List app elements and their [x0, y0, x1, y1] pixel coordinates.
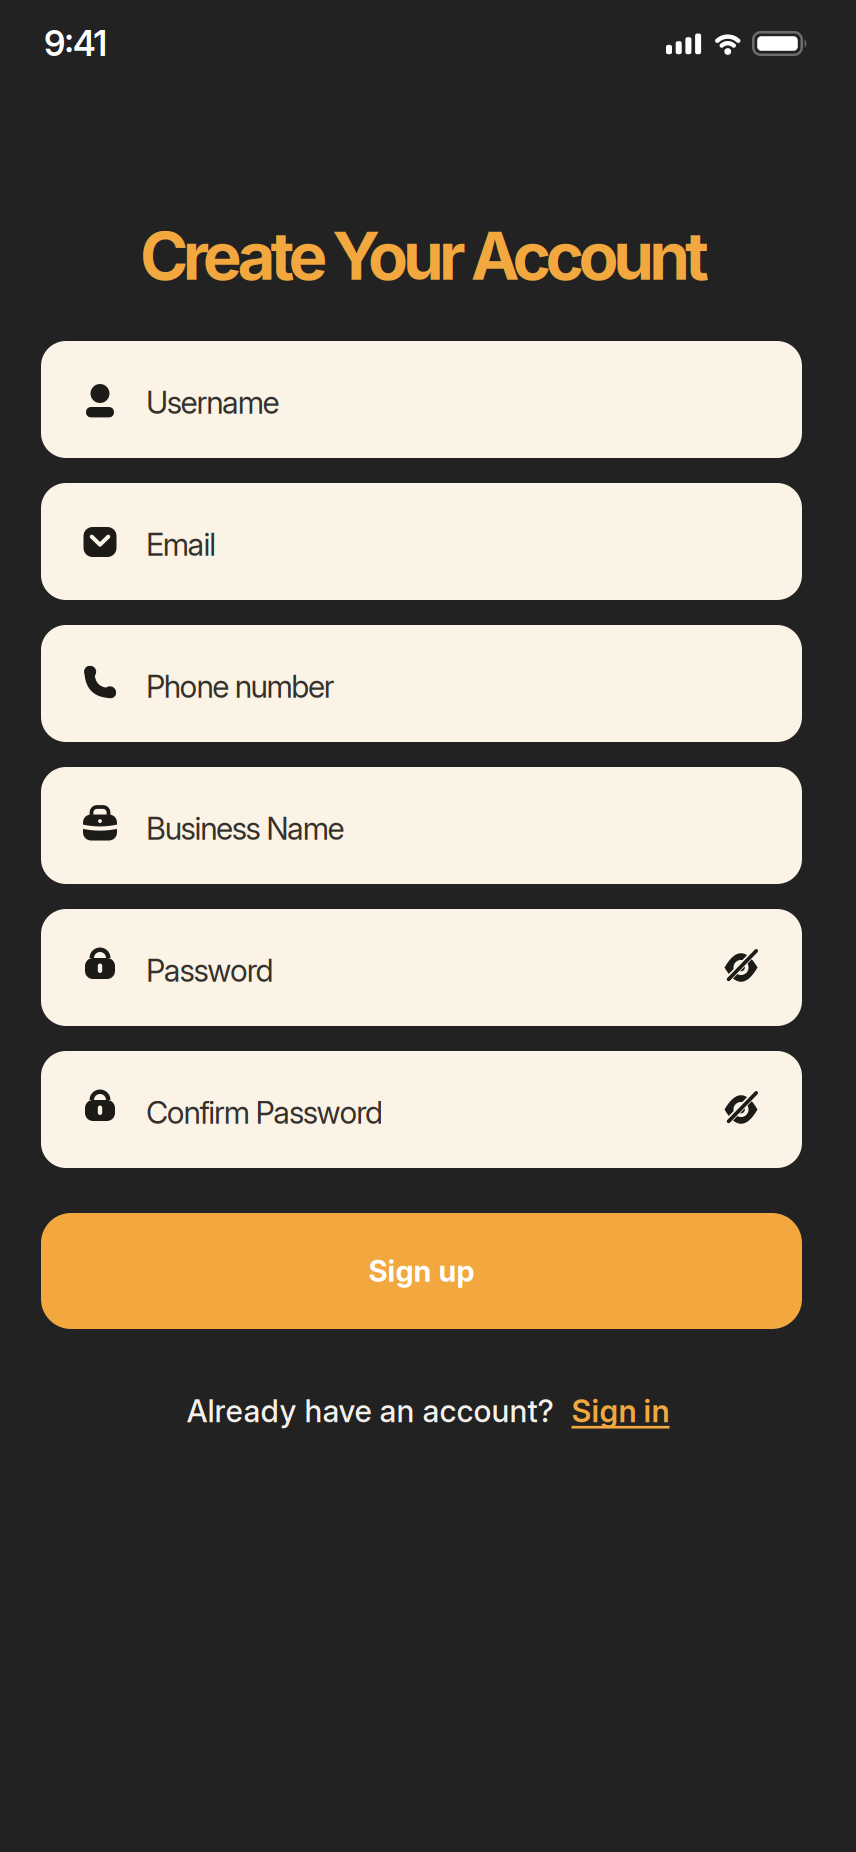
staticText: 9:41 — [44, 23, 107, 64]
button[interactable]: Phone number — [0, 625, 856, 742]
button[interactable]: Sign up — [0, 1213, 856, 1329]
button[interactable]: Show password — [721, 947, 802, 987]
staticText: Password — [146, 952, 274, 989]
button[interactable]: Email — [0, 483, 856, 600]
button[interactable]: Business Name — [0, 767, 856, 884]
button[interactable]: Password — [0, 909, 856, 1026]
button[interactable]: Username — [0, 341, 856, 458]
staticText: Phone number — [146, 668, 335, 705]
staticText: Email — [146, 526, 216, 563]
button[interactable]: Show password — [721, 1089, 802, 1129]
button[interactable]: Sign in — [571, 1393, 669, 1429]
staticText: Already have an account? — [186, 1393, 553, 1429]
staticText: Username — [146, 384, 280, 421]
staticText: Sign up — [368, 1254, 474, 1288]
staticText: Business Name — [146, 810, 345, 847]
staticText: Confirm Password — [146, 1094, 383, 1131]
staticText: Sign in — [571, 1393, 669, 1429]
button[interactable]: Confirm Password — [0, 1051, 856, 1168]
staticText: Create Your Account — [140, 217, 709, 295]
